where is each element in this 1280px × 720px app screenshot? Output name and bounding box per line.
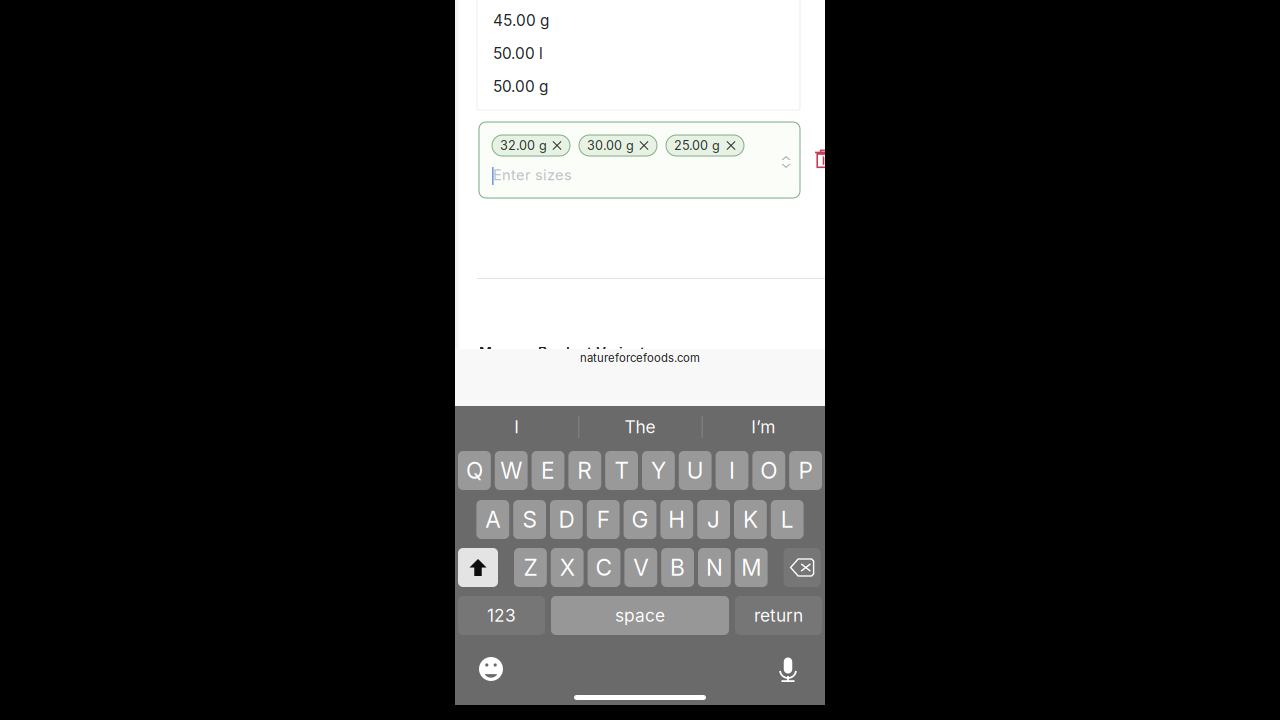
button[interactable]: P	[789, 451, 822, 490]
staticText: M	[741, 554, 761, 581]
button[interactable]: 123	[458, 596, 545, 635]
button[interactable]: natureforcefoods.com	[580, 351, 700, 365]
button[interactable]: H	[660, 500, 693, 539]
staticText: O	[760, 457, 777, 484]
staticText: T	[615, 457, 629, 484]
staticText: V	[633, 554, 648, 581]
button[interactable]: I	[455, 406, 578, 448]
button[interactable]: Y	[642, 451, 675, 490]
button[interactable]: G	[624, 500, 656, 539]
staticText: A	[485, 506, 500, 533]
staticText: U	[687, 457, 704, 484]
staticText: natureforcefoods.com	[580, 351, 700, 365]
button[interactable]: T	[605, 451, 638, 490]
staticText: Z	[523, 554, 537, 581]
button[interactable]: R	[568, 451, 601, 490]
staticText: G	[631, 506, 648, 533]
staticText: H	[668, 506, 685, 533]
staticText: B	[670, 554, 685, 581]
button[interactable]: M	[735, 548, 768, 587]
button[interactable]: K	[734, 500, 767, 539]
button[interactable]: return	[735, 596, 822, 635]
button[interactable]: S	[513, 500, 546, 539]
staticText: J	[707, 506, 720, 533]
button[interactable]: D	[550, 500, 583, 539]
button[interactable]: L	[771, 500, 804, 539]
button[interactable]: Delete variant	[815, 150, 832, 169]
button[interactable]: W	[495, 451, 528, 490]
staticText: The	[624, 416, 655, 437]
staticText: 50.00 l	[493, 44, 543, 63]
staticText: 25.00 g	[674, 138, 720, 153]
button[interactable]: 45.00 g	[477, 4, 800, 37]
button[interactable]: Shift	[458, 548, 498, 587]
staticText: E	[541, 457, 555, 484]
staticText: C	[595, 554, 612, 581]
button[interactable]: O	[752, 451, 785, 490]
staticText: N	[706, 554, 723, 581]
button[interactable]: B	[661, 548, 694, 587]
button[interactable]: C	[588, 548, 620, 587]
button[interactable]: Emoji keyboard	[479, 657, 503, 681]
button[interactable]: J	[697, 500, 730, 539]
staticText: I’m	[751, 416, 775, 437]
staticText: Q	[466, 457, 483, 484]
button[interactable]: Backspace	[784, 548, 821, 587]
staticText: I	[514, 416, 519, 437]
staticText: 123	[487, 605, 516, 626]
button[interactable]: A	[476, 500, 509, 539]
staticText: return	[754, 605, 803, 626]
button[interactable]: F	[587, 500, 620, 539]
button[interactable]: 50.00 l	[477, 37, 800, 70]
button[interactable]: Dictation	[778, 656, 798, 683]
button[interactable]: Expand options	[778, 153, 794, 171]
staticText: Manage Product Variants	[479, 344, 653, 361]
button[interactable]: I	[716, 451, 748, 490]
button[interactable]: 32.00 g	[492, 135, 570, 156]
button[interactable]: X	[551, 548, 584, 587]
button[interactable]: I’m	[702, 406, 825, 448]
button[interactable]: 25.00 g	[666, 135, 744, 156]
staticText: F	[597, 506, 610, 533]
button[interactable]: The	[578, 406, 702, 448]
staticText: I	[729, 457, 735, 484]
staticText: 50.00 g	[493, 77, 548, 96]
staticText: D	[558, 506, 574, 533]
staticText: space	[615, 605, 665, 626]
staticText: Enter sizes	[493, 166, 572, 184]
button[interactable]: 30.00 g	[579, 135, 657, 156]
staticText: R	[577, 457, 592, 484]
staticText: K	[743, 506, 758, 533]
staticText: S	[523, 506, 537, 533]
staticText: P	[799, 457, 813, 484]
button[interactable]: space	[551, 596, 729, 635]
button[interactable]: Z	[514, 548, 547, 587]
button[interactable]: V	[624, 548, 657, 587]
staticText: L	[781, 506, 794, 533]
button[interactable]: E	[532, 451, 564, 490]
staticText: Y	[651, 457, 666, 484]
button[interactable]: U	[679, 451, 712, 490]
button[interactable]: Q	[458, 451, 491, 490]
staticText: 30.00 g	[587, 138, 634, 153]
staticText: W	[500, 457, 522, 484]
staticText: 32.00 g	[500, 138, 547, 153]
button[interactable]: 50.00 g	[477, 70, 800, 103]
staticText: X	[560, 554, 575, 581]
staticText: 45.00 g	[493, 11, 549, 30]
button[interactable]: N	[698, 548, 731, 587]
